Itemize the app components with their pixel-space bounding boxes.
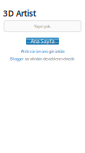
staticText: 3D Artist <box>3 8 36 19</box>
button[interactable]: Ana Sayfa <box>26 38 59 45</box>
button[interactable]: 3D Artist <box>0 8 36 19</box>
button[interactable]: Blogger <box>10 56 24 61</box>
staticText: Web sürümünü görüntüle <box>20 49 64 54</box>
staticText: Blogger <box>10 56 24 61</box>
staticText: Yayın yok. <box>34 23 51 29</box>
staticText: tarafından desteklenmektedir. <box>25 56 75 61</box>
button[interactable]: Web sürümünü görüntüle <box>0 49 85 54</box>
staticText: Ana Sayfa <box>30 38 54 45</box>
